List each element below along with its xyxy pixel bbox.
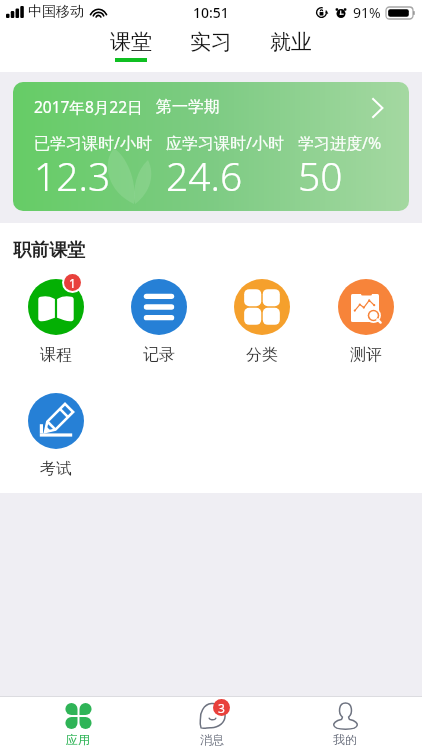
staticText: 2017年8月22日 [34,96,143,117]
button[interactable]: 就业 [269,24,313,62]
staticText: 职前课堂 [13,239,85,262]
button[interactable]: 测评 [314,279,418,365]
staticText: 应学习课时/小时 [166,132,284,154]
button[interactable]: 2017年8月22日 [13,82,409,211]
staticText: 课程 [40,345,72,365]
staticText: 我的 [333,732,357,747]
button[interactable]: 我的 [278,697,411,747]
other: 查看详情 [372,99,383,117]
staticText: 24.6 [166,149,243,202]
staticText: 测评 [350,345,382,365]
button[interactable]: 3 [145,697,278,747]
staticText: 考试 [40,459,72,479]
button[interactable]: 分类 [210,279,314,365]
staticText: 应用 [66,732,90,747]
staticText: 消息 [200,732,224,747]
staticText: 已学习课时/小时 [34,132,152,154]
staticText: 记录 [143,345,175,365]
staticText: 12.3 [34,149,111,202]
staticText: 1 [69,275,76,291]
staticText: 91% [353,3,381,22]
button[interactable]: 应用 [11,697,145,747]
button[interactable]: 考试 [4,393,107,479]
button[interactable]: 课堂 [109,24,153,62]
staticText: 课堂 [110,29,152,55]
staticText: 就业 [270,29,312,55]
staticText: 分类 [246,345,278,365]
staticText: 中国移动 [28,3,84,21]
staticText: 10:51 [193,3,229,22]
button[interactable]: 实习 [189,24,233,62]
button[interactable]: 记录 [107,279,210,365]
staticText: 学习进度/% [298,132,382,154]
staticText: 第一学期 [156,97,220,117]
staticText: 50 [298,149,343,202]
staticText: 3 [218,700,225,716]
button[interactable]: 1 [4,279,107,365]
staticText: 实习 [190,29,232,55]
